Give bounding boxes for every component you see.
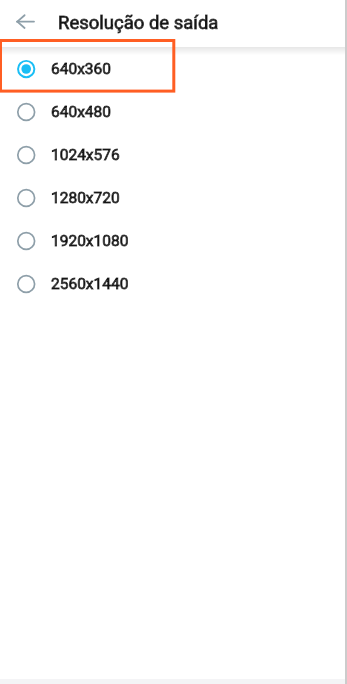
button[interactable]: 640x360 [0,47,347,90]
button[interactable]: 1024x576 [0,133,347,176]
button[interactable]: 1280x720 [0,176,347,219]
staticText: 1024x576 [51,146,120,164]
staticText: 640x480 [51,103,111,121]
button[interactable]: 2560x1440 [0,262,347,305]
staticText: 640x360 [51,60,111,78]
staticText: 1920x1080 [51,232,129,250]
staticText: 1280x720 [51,189,120,207]
button[interactable]: Back [11,8,38,35]
staticText: Resolução de saída [58,12,219,34]
staticText: 2560x1440 [51,275,129,293]
staticText: 2560x1440 [51,275,129,293]
button[interactable]: 1920x1080 [0,219,347,262]
button[interactable]: 640x480 [0,90,347,133]
staticText: 1920x1080 [51,232,129,250]
staticText: 640x360 [51,60,111,78]
staticText: 640x480 [51,103,111,121]
staticText: 1280x720 [51,189,120,207]
staticText: 1024x576 [51,146,120,164]
staticText: Resolução de saída [58,12,219,34]
